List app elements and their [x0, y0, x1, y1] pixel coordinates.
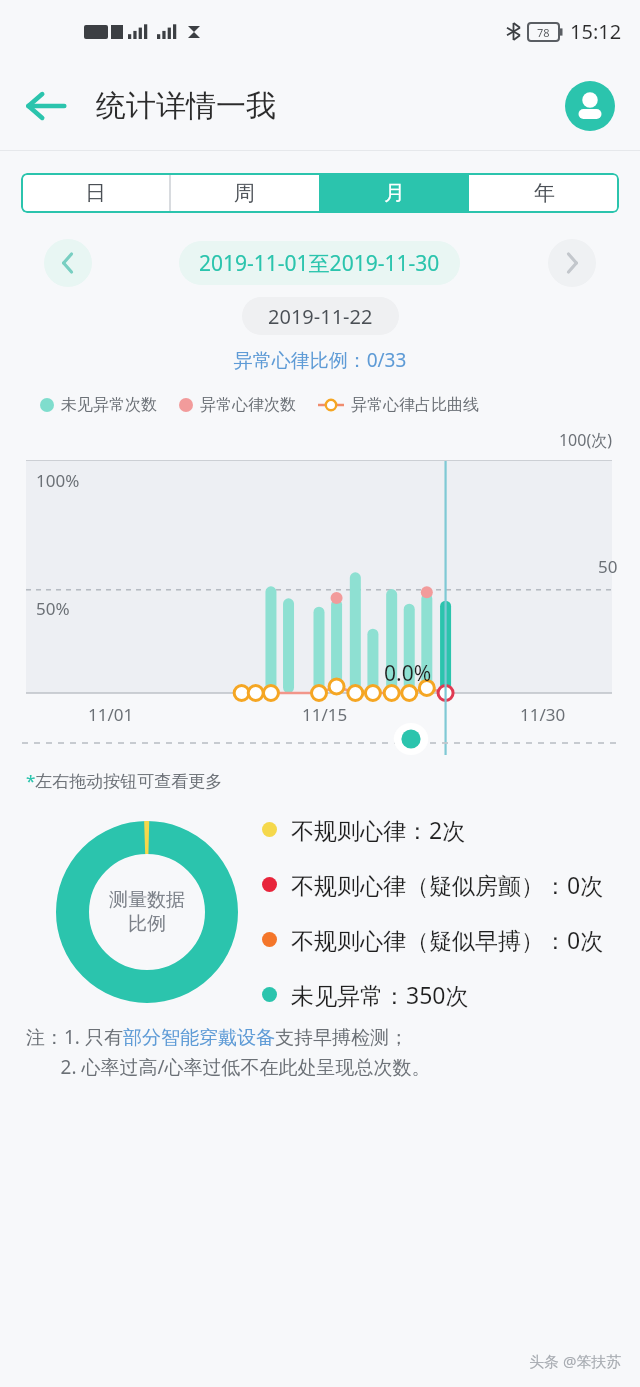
- staticText: 100(次): [0, 429, 612, 451]
- staticText: 统计详情一我: [96, 87, 276, 125]
- button[interactable]: Previous period: [44, 239, 92, 287]
- staticText: 不规则心律（疑似房颤）：0次: [291, 869, 604, 900]
- staticText: 异常心律比例：0/33: [0, 347, 640, 373]
- staticText: 11/30: [520, 703, 566, 726]
- staticText: 100%: [36, 469, 80, 492]
- staticText: 未见异常次数: [61, 395, 157, 415]
- staticText: 未见异常：350次: [291, 979, 469, 1010]
- button[interactable]: Next period: [548, 239, 596, 287]
- staticText: 2019-11-01至2019-11-30: [199, 249, 440, 278]
- staticText: 不规则心律：2次: [291, 814, 466, 845]
- staticText: 测量数据: [109, 888, 185, 912]
- button[interactable]: 2019-11-22: [242, 297, 399, 335]
- button[interactable]: 2019-11-01至2019-11-30: [179, 241, 460, 285]
- staticText: 78: [537, 25, 550, 40]
- staticText: 2. 心率过高/心率过低不在此处呈现总次数。: [26, 1054, 431, 1080]
- staticText: 异常心律次数: [200, 395, 296, 415]
- staticText: *左右拖动按钮可查看更多: [26, 769, 223, 792]
- staticText: 周: [234, 180, 255, 206]
- staticText: 年: [534, 180, 555, 206]
- staticText: 50: [598, 555, 618, 578]
- button[interactable]: Profile: [565, 81, 615, 131]
- staticText: 异常心律占比曲线: [351, 395, 479, 415]
- staticText: 11/15: [302, 703, 348, 726]
- staticText: 15:12: [570, 18, 622, 45]
- button[interactable]: 周: [170, 173, 319, 213]
- staticText: 11/01: [88, 703, 134, 726]
- button[interactable]: Back: [22, 83, 68, 129]
- staticText: 月: [384, 180, 405, 206]
- staticText: 2019-11-22: [268, 303, 373, 330]
- staticText: 50%: [36, 597, 70, 620]
- button[interactable]: Drag to scrub chart: [384, 723, 438, 755]
- staticText: 0.0%: [384, 659, 432, 688]
- staticText: 头条 @笨扶苏: [529, 1351, 622, 1371]
- staticText: 注：1. 只有部分智能穿戴设备支持早搏检测；: [26, 1024, 408, 1050]
- staticText: 日: [85, 180, 106, 206]
- button[interactable]: 年: [469, 173, 619, 213]
- staticText: 比例: [128, 912, 166, 936]
- button[interactable]: 月: [319, 173, 469, 213]
- staticText: 不规则心律（疑似早搏）：0次: [291, 924, 604, 955]
- button[interactable]: 日: [21, 173, 170, 213]
